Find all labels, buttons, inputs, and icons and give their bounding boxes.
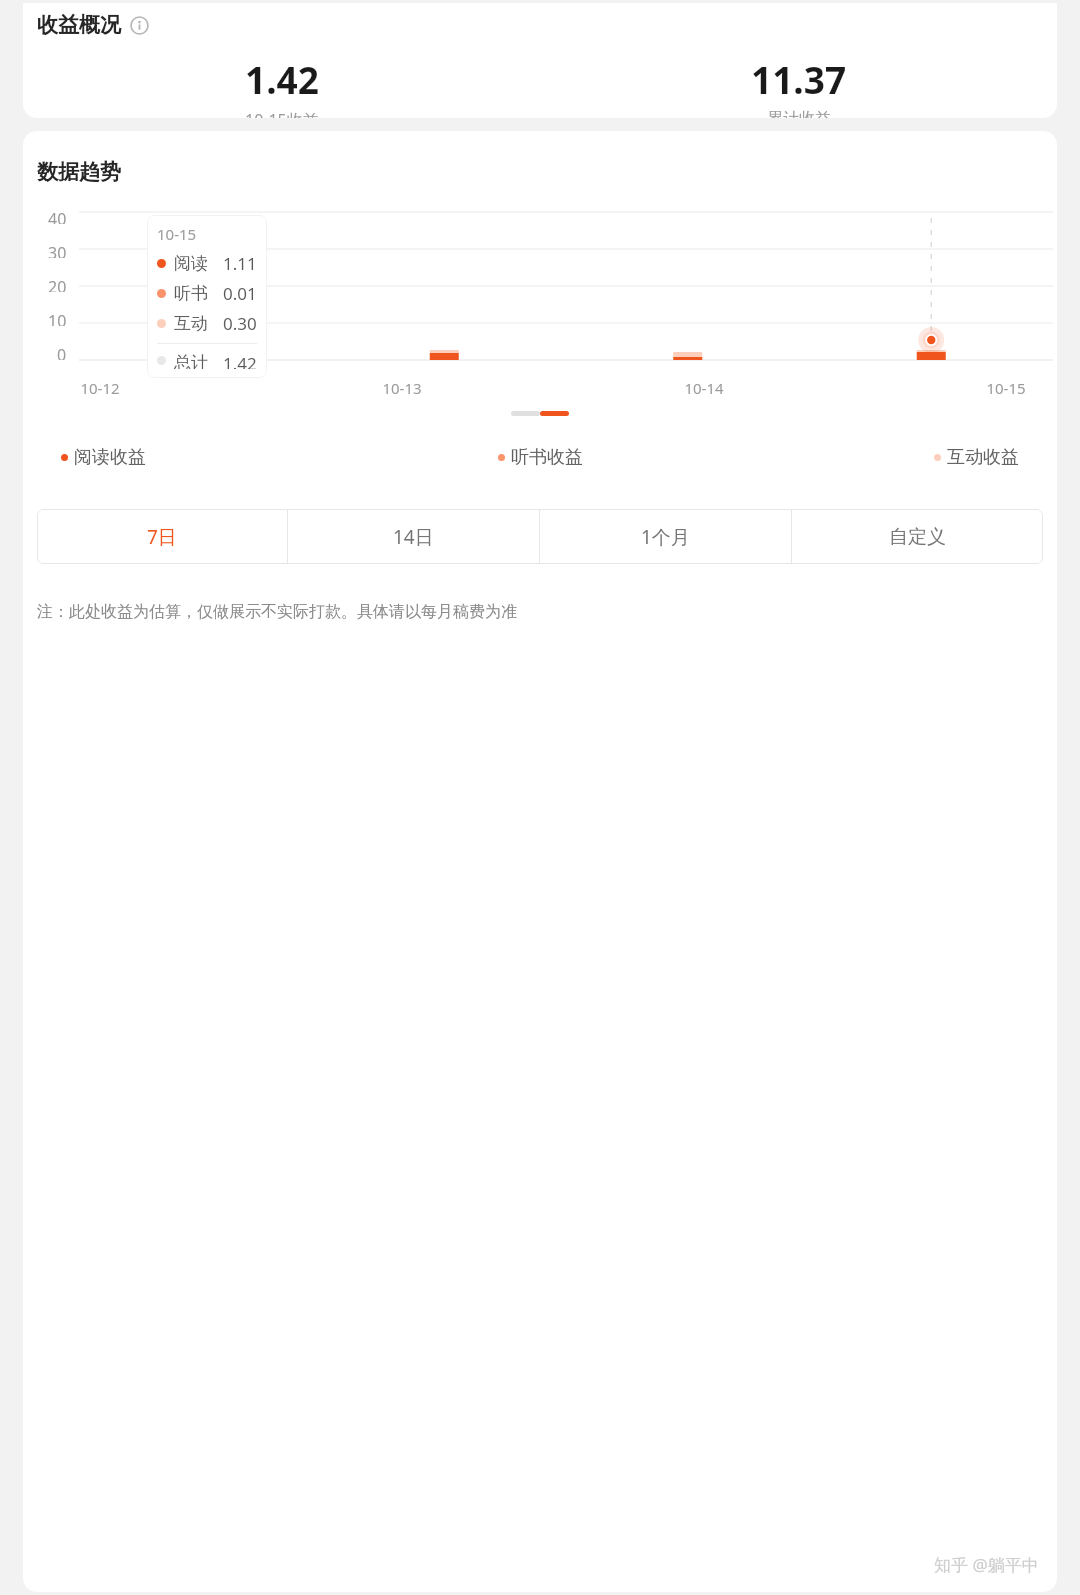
staticText: 总计 bbox=[174, 352, 208, 369]
staticText: 听书收益 bbox=[511, 446, 583, 469]
button[interactable]: 14日 bbox=[288, 509, 539, 564]
staticText: 0.01 bbox=[223, 282, 257, 305]
staticText: 知乎 @躺平中 bbox=[934, 1553, 1039, 1576]
staticText: 1.42 bbox=[245, 54, 319, 104]
button[interactable]: 1个月 bbox=[540, 509, 791, 564]
staticText: 1.11 bbox=[223, 252, 257, 275]
staticText: 阅读收益 bbox=[74, 446, 146, 469]
staticText: 10-14 bbox=[673, 378, 735, 398]
button[interactable]: 自定义 bbox=[792, 509, 1043, 564]
staticText: 10-15 bbox=[157, 224, 197, 244]
staticText: 1个月 bbox=[641, 524, 690, 550]
staticText: 11.37 bbox=[751, 54, 847, 104]
staticText: 阅读 bbox=[174, 253, 208, 274]
staticText: 10-12 bbox=[69, 378, 131, 398]
staticText: 7日 bbox=[147, 524, 177, 550]
staticText: 收益概况 bbox=[37, 12, 121, 38]
staticText: 0 bbox=[57, 344, 67, 360]
staticText: 1.42 bbox=[223, 352, 257, 369]
staticText: 互动收益 bbox=[947, 446, 1019, 469]
staticText: 自定义 bbox=[889, 525, 946, 549]
staticText: 听书 bbox=[174, 283, 208, 304]
staticText: 注：此处收益为估算，仅做展示不实际打款。具体请以每月稿费为准 bbox=[37, 602, 517, 622]
staticText: 20 bbox=[48, 276, 67, 292]
staticText: 40 bbox=[48, 208, 67, 224]
staticText: 0.30 bbox=[223, 312, 257, 335]
staticText: 累计收益 bbox=[767, 109, 831, 118]
staticText: 10 bbox=[48, 310, 67, 326]
staticText: 数据趋势 bbox=[37, 159, 121, 185]
button[interactable]: 说明 bbox=[130, 16, 149, 35]
staticText: 10-13 bbox=[371, 378, 433, 398]
staticText: 30 bbox=[48, 242, 67, 258]
staticText: 10-15 bbox=[975, 378, 1037, 398]
staticText: 10-15收益 bbox=[245, 109, 319, 118]
button[interactable]: 7日 bbox=[37, 509, 287, 564]
staticText: 14日 bbox=[393, 524, 434, 550]
staticText: 互动 bbox=[174, 313, 208, 334]
